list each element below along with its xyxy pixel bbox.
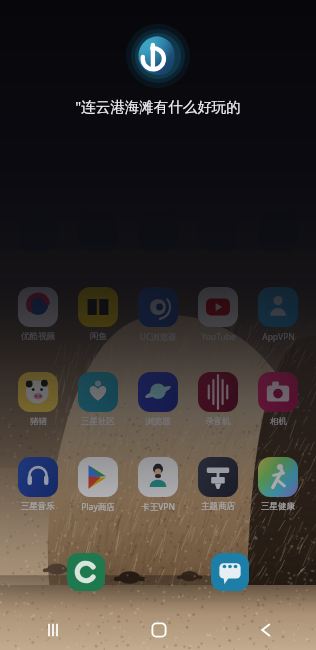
button[interactable]: AppVPN bbox=[251, 287, 305, 343]
staticText: YouTube bbox=[201, 331, 236, 343]
staticText: 录音机 bbox=[205, 416, 231, 427]
button[interactable]: Messages bbox=[211, 553, 249, 591]
button[interactable]: 闲鱼 bbox=[71, 287, 125, 342]
staticText: AppVPN bbox=[262, 331, 295, 343]
staticText: 浏览器 bbox=[145, 416, 171, 427]
staticText: 猪猪 bbox=[30, 416, 47, 427]
staticText: "连云港海滩有什么好玩的 bbox=[18, 96, 298, 116]
staticText: Play商店 bbox=[81, 501, 115, 513]
button[interactable]: 主题商店 bbox=[191, 457, 245, 512]
button[interactable]: 相机 bbox=[251, 372, 305, 427]
button[interactable]: Bixby bbox=[130, 28, 186, 84]
staticText: 卡王VPN bbox=[141, 501, 175, 513]
staticText: 三星音乐 bbox=[21, 501, 55, 512]
button[interactable]: Recent apps bbox=[0, 610, 106, 650]
button[interactable]: Back bbox=[211, 610, 316, 650]
button[interactable]: 录音机 bbox=[191, 372, 245, 427]
button[interactable]: UC浏览器 bbox=[131, 287, 185, 343]
button[interactable]: 卡王VPN bbox=[131, 457, 185, 513]
button[interactable]: Home bbox=[106, 610, 211, 650]
button[interactable]: 浏览器 bbox=[131, 372, 185, 427]
button[interactable]: 三星音乐 bbox=[11, 457, 65, 512]
button[interactable]: Phone bbox=[67, 553, 105, 591]
staticText: 三星健康 bbox=[261, 501, 295, 512]
staticText: 优酷视频 bbox=[21, 331, 55, 342]
button[interactable]: 猪猪 bbox=[11, 372, 65, 427]
button[interactable]: YouTube bbox=[191, 287, 245, 343]
button[interactable]: 优酷视频 bbox=[11, 287, 65, 342]
staticText: 主题商店 bbox=[201, 501, 235, 512]
button[interactable]: 三星健康 bbox=[251, 457, 305, 512]
staticText: 相机 bbox=[270, 416, 287, 427]
staticText: 闲鱼 bbox=[90, 331, 107, 342]
staticText: 三星社区 bbox=[81, 416, 115, 427]
staticText: UC浏览器 bbox=[139, 331, 177, 343]
button[interactable]: Play商店 bbox=[71, 457, 125, 513]
button[interactable]: 三星社区 bbox=[71, 372, 125, 427]
